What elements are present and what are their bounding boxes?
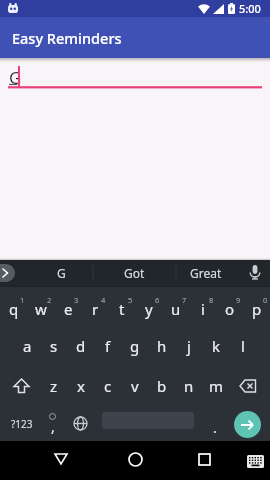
staticText: r (92, 299, 99, 319)
staticText: h (157, 336, 167, 356)
staticText: z (50, 376, 58, 396)
staticText: y (145, 299, 153, 319)
button[interactable] (48, 446, 74, 472)
staticText: j (187, 336, 191, 356)
staticText: e (64, 299, 73, 319)
staticText: 6 (155, 295, 160, 305)
staticText: G (9, 66, 22, 89)
staticText: s (50, 336, 58, 356)
staticText: q (9, 299, 19, 319)
button[interactable] (191, 446, 217, 472)
staticText: Great (190, 265, 222, 281)
button[interactable] (244, 449, 266, 473)
staticText: 3 (74, 295, 79, 305)
button[interactable] (122, 446, 148, 472)
staticText: x (77, 376, 85, 396)
staticText: 9 (236, 295, 241, 305)
button[interactable]: G (0, 58, 270, 90)
staticText: t (119, 299, 125, 319)
staticText: f (105, 336, 111, 356)
staticText: d (76, 336, 86, 356)
staticText: Got (124, 265, 145, 281)
staticText: o (225, 299, 235, 319)
staticText: g (130, 336, 140, 356)
staticText: l (241, 336, 245, 356)
staticText: a (23, 336, 32, 356)
staticText: n (184, 376, 194, 396)
staticText: G (57, 265, 66, 281)
button[interactable] (234, 411, 261, 438)
staticText: ?123 (11, 417, 33, 431)
staticText: c (104, 376, 112, 396)
staticText: 1 (20, 295, 25, 305)
staticText: m (209, 376, 224, 396)
staticText: 2 (47, 295, 52, 305)
staticText: w (35, 299, 47, 319)
staticText: b (157, 376, 167, 396)
staticText: 7 (182, 295, 187, 305)
staticText: , (51, 417, 55, 436)
button[interactable]: q (0, 286, 270, 441)
staticText: 5:00 (239, 1, 261, 16)
staticText: 8 (209, 295, 214, 305)
staticText: i (201, 299, 205, 319)
staticText: Easy Reminders (12, 28, 122, 48)
button[interactable] (0, 264, 15, 282)
staticText: 4 (101, 295, 106, 305)
staticText: u (171, 299, 181, 319)
staticText: p (252, 299, 262, 319)
staticText: v (131, 376, 139, 396)
staticText: 5 (128, 295, 133, 305)
staticText: . (213, 418, 217, 437)
staticText: k (212, 336, 221, 356)
button[interactable]: Easy Reminders (0, 17, 270, 58)
staticText: 0 (263, 295, 268, 305)
